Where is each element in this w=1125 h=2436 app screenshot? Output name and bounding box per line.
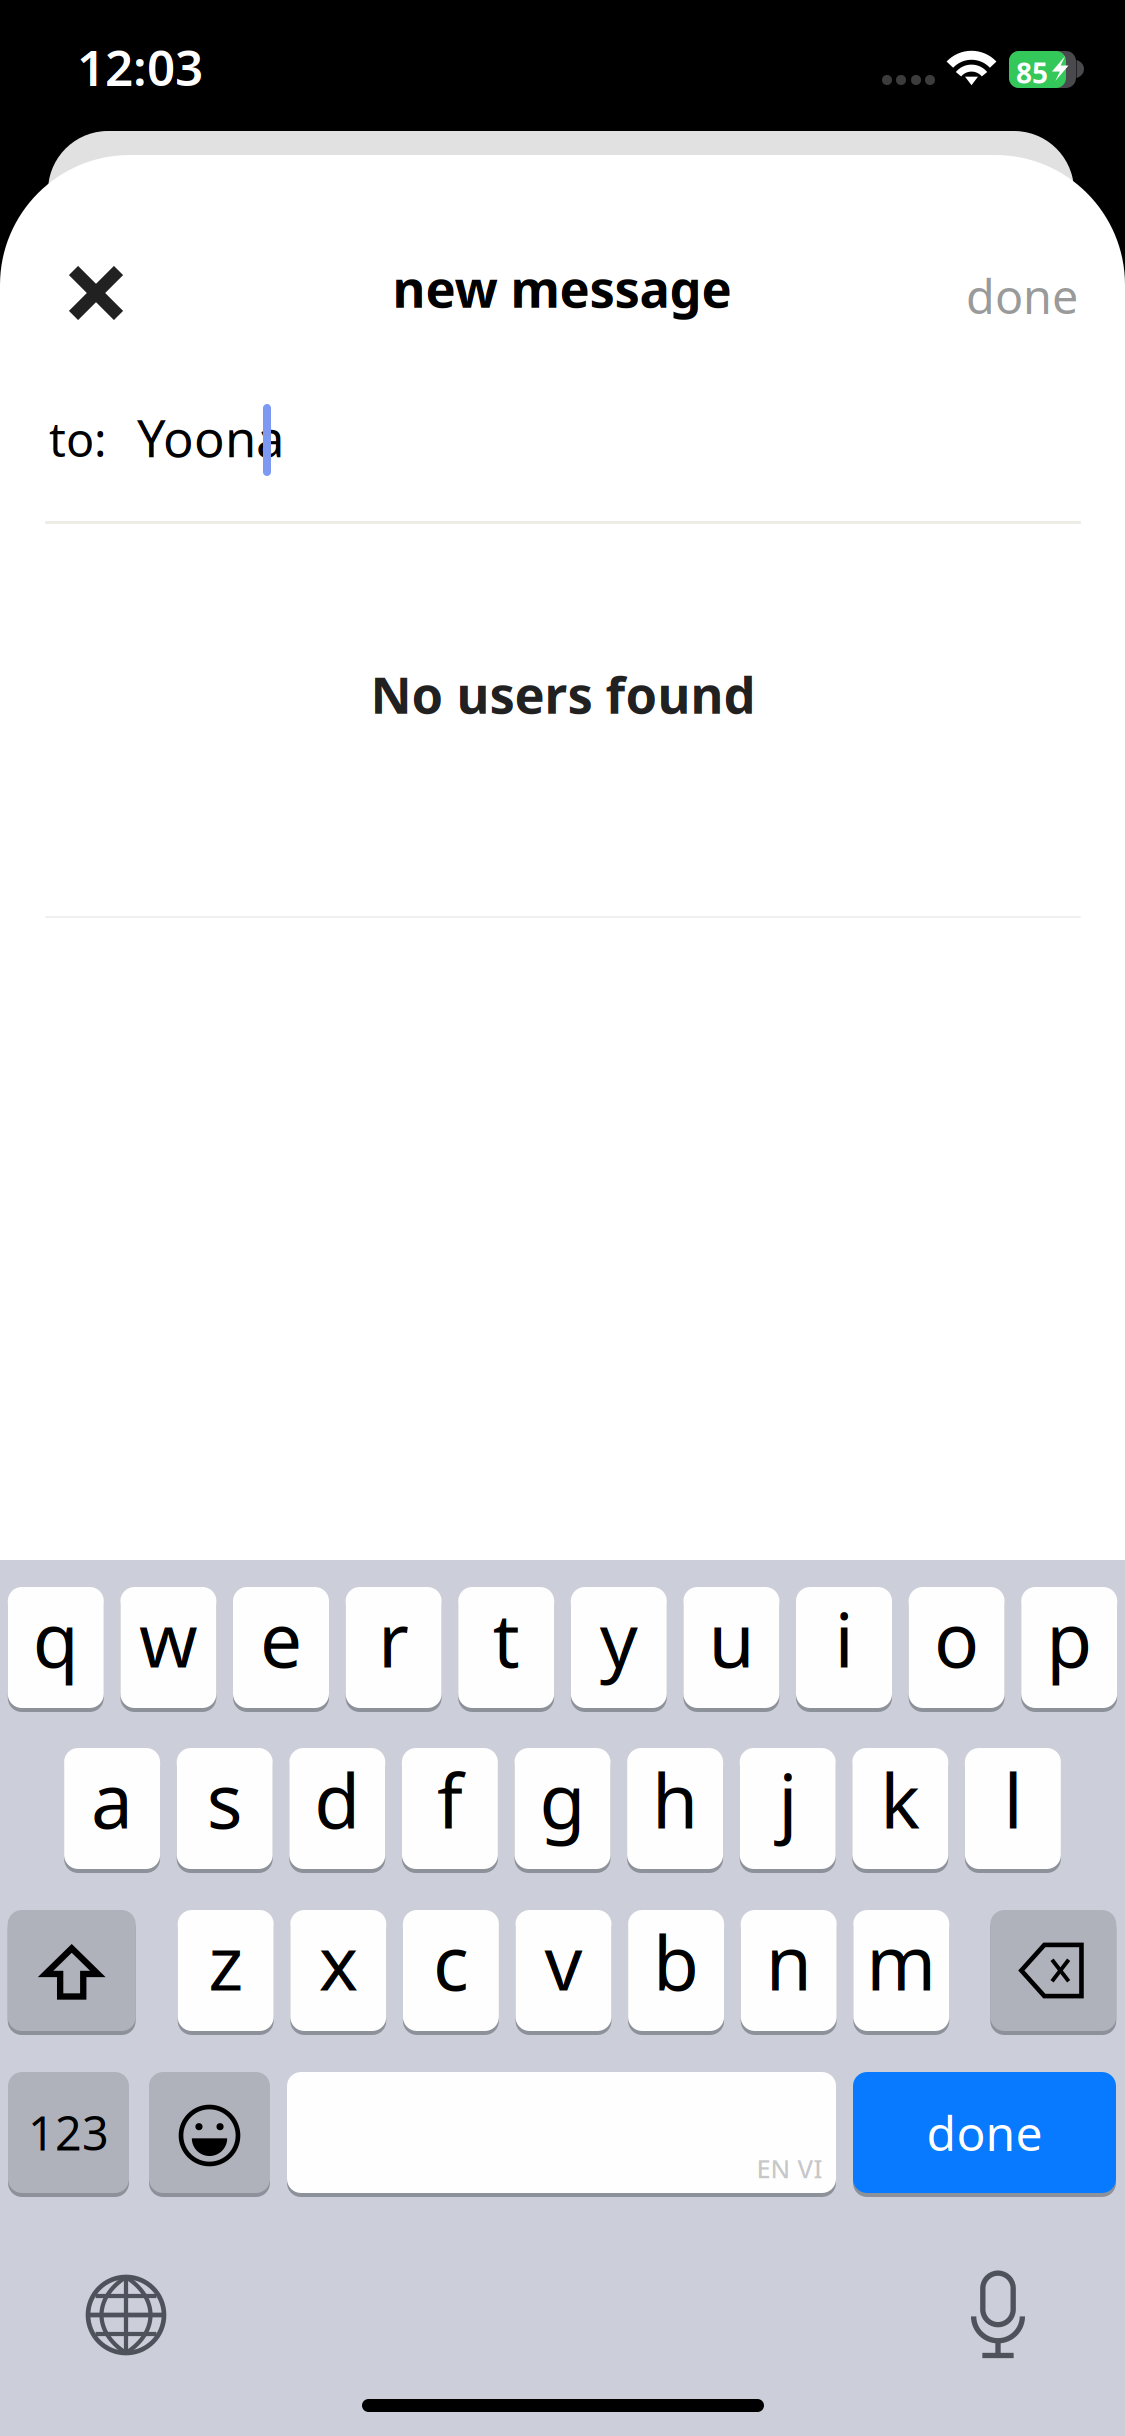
staticText: x xyxy=(319,1912,358,2011)
button[interactable]: Shift xyxy=(8,1908,136,2033)
staticText: y xyxy=(600,1589,638,1688)
staticText: s xyxy=(207,1750,243,1849)
button[interactable]: d xyxy=(289,1746,385,1871)
staticText: a xyxy=(91,1750,133,1849)
button[interactable]: b xyxy=(628,1908,724,2033)
button[interactable]: o xyxy=(909,1585,1005,1710)
staticText: p xyxy=(1046,1589,1092,1688)
button[interactable]: t xyxy=(458,1585,554,1710)
staticText: to: xyxy=(49,408,107,470)
button[interactable]: k xyxy=(852,1746,948,1871)
button[interactable]: done xyxy=(942,251,1102,341)
button[interactable]: m xyxy=(853,1908,949,2033)
button[interactable]: h xyxy=(627,1746,723,1871)
button[interactable]: Emoji xyxy=(149,2070,270,2195)
button[interactable]: s xyxy=(177,1746,273,1871)
button[interactable]: q xyxy=(8,1585,104,1710)
staticText: 12:03 xyxy=(77,34,203,99)
button[interactable]: r xyxy=(346,1585,442,1710)
button[interactable]: 123 xyxy=(8,2070,129,2195)
staticText: n xyxy=(766,1912,812,2011)
button[interactable]: f xyxy=(402,1746,498,1871)
button[interactable]: done xyxy=(853,2070,1116,2195)
button[interactable]: z xyxy=(178,1908,274,2033)
staticText: h xyxy=(652,1750,698,1849)
staticText: b xyxy=(653,1912,699,2011)
staticText: EN VI xyxy=(756,2152,822,2185)
staticText: No users found xyxy=(370,660,755,728)
staticText: done xyxy=(966,265,1078,327)
staticText: u xyxy=(708,1589,754,1688)
staticText: v xyxy=(544,1912,582,2011)
staticText: i xyxy=(834,1589,853,1688)
button[interactable]: new message xyxy=(352,248,772,328)
button[interactable]: Close xyxy=(36,238,156,348)
button[interactable]: j xyxy=(740,1746,836,1871)
button[interactable]: a xyxy=(64,1746,160,1871)
staticText: done xyxy=(926,2101,1042,2164)
staticText: k xyxy=(880,1750,920,1849)
staticText: d xyxy=(314,1750,360,1849)
staticText: 85 xyxy=(1016,54,1048,91)
staticText: m xyxy=(866,1912,936,2011)
button[interactable]: y xyxy=(571,1585,667,1710)
staticText: e xyxy=(260,1589,302,1688)
staticText: Yoona xyxy=(137,404,284,471)
button[interactable]: u xyxy=(683,1585,779,1710)
button[interactable]: Delete xyxy=(990,1908,1116,2033)
staticText: t xyxy=(493,1589,520,1688)
staticText: j xyxy=(778,1750,797,1849)
button[interactable]: e xyxy=(233,1585,329,1710)
staticText: w xyxy=(139,1589,198,1688)
button[interactable]: g xyxy=(514,1746,610,1871)
button[interactable]: Dictate xyxy=(933,2250,1063,2380)
button[interactable]: i xyxy=(796,1585,892,1710)
button[interactable]: w xyxy=(120,1585,216,1710)
button[interactable]: c xyxy=(403,1908,499,2033)
staticText: l xyxy=(1003,1750,1022,1849)
staticText: z xyxy=(208,1912,243,2011)
button[interactable]: x xyxy=(290,1908,386,2033)
staticText: q xyxy=(33,1589,79,1688)
button[interactable]: n xyxy=(741,1908,837,2033)
button[interactable]: l xyxy=(965,1746,1061,1871)
staticText: o xyxy=(934,1589,979,1688)
button[interactable]: space xyxy=(287,2070,836,2195)
staticText: new message xyxy=(392,254,731,322)
staticText: g xyxy=(539,1750,585,1849)
staticText: c xyxy=(433,1912,469,2011)
button[interactable]: Next keyboard xyxy=(61,2250,191,2380)
staticText: 123 xyxy=(28,2101,109,2163)
button[interactable]: p xyxy=(1021,1585,1117,1710)
button[interactable]: v xyxy=(515,1908,611,2033)
staticText: r xyxy=(378,1589,409,1688)
staticText: f xyxy=(437,1750,463,1849)
